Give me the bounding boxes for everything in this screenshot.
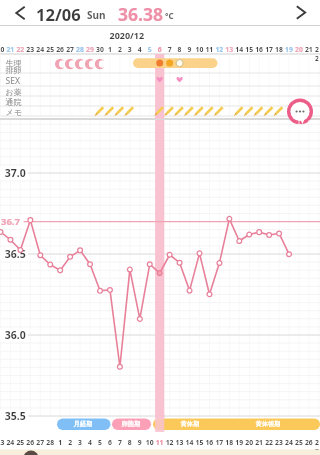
- button[interactable]: Basal body temperature chart: [0, 120, 320, 418]
- button[interactable]: Next day: [280, 0, 320, 26]
- button[interactable]: Memo: [286, 98, 314, 126]
- button[interactable]: Previous day: [0, 0, 40, 26]
